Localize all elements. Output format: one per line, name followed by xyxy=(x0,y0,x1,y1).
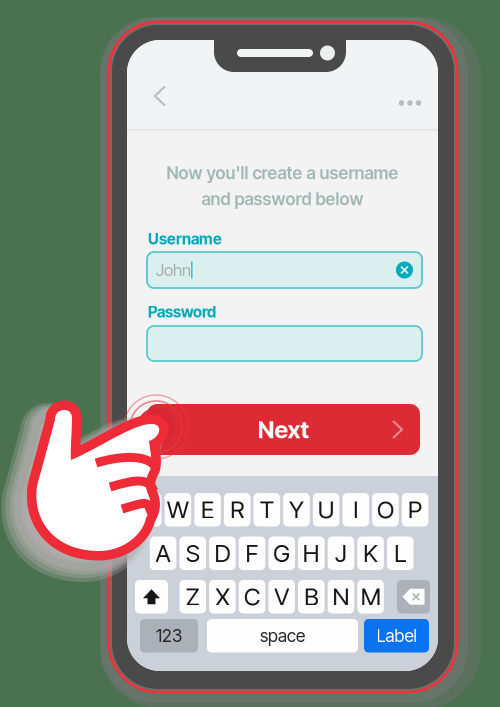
staticText: K xyxy=(363,539,378,568)
staticText: O xyxy=(377,495,394,524)
staticText: B xyxy=(304,582,318,611)
staticText: F xyxy=(245,539,258,568)
staticText: Username xyxy=(148,230,222,248)
button[interactable]: L xyxy=(387,536,413,570)
button[interactable]: Back xyxy=(155,86,165,106)
staticText: Next xyxy=(257,415,309,444)
button[interactable]: Next xyxy=(147,404,420,455)
staticText: 123 xyxy=(156,625,182,646)
staticText: John xyxy=(156,260,191,280)
staticText: Label xyxy=(376,625,416,646)
button[interactable]: G xyxy=(268,536,295,570)
button[interactable]: B xyxy=(298,580,325,613)
button[interactable]: Y xyxy=(283,493,310,526)
button[interactable]: C xyxy=(239,580,265,613)
staticText: S xyxy=(186,539,200,568)
button[interactable]: Shift xyxy=(135,580,168,613)
button[interactable]: Delete xyxy=(397,580,430,613)
staticText: C xyxy=(244,582,260,611)
staticText: N xyxy=(332,582,349,611)
staticText: W xyxy=(167,495,189,524)
button[interactable]: Label xyxy=(364,619,429,652)
button[interactable]: E xyxy=(194,493,221,526)
staticText: P xyxy=(408,495,422,524)
button[interactable]: Q xyxy=(135,493,161,526)
button[interactable]: S xyxy=(179,536,206,570)
button[interactable]: O xyxy=(372,493,399,526)
button[interactable]: 123 xyxy=(140,619,198,652)
staticText: X xyxy=(215,582,229,611)
staticText: Q xyxy=(140,495,157,524)
button[interactable]: space xyxy=(207,619,358,652)
button[interactable]: X xyxy=(209,580,236,613)
button[interactable]: A xyxy=(150,536,176,570)
staticText: Password xyxy=(148,303,216,321)
staticText: space xyxy=(260,625,305,646)
staticText: A xyxy=(156,539,171,568)
staticText: L xyxy=(394,539,406,568)
staticText: H xyxy=(303,539,320,568)
button[interactable]: Z xyxy=(179,580,206,613)
button[interactable]: K xyxy=(357,536,384,570)
staticText: G xyxy=(273,539,290,568)
staticText: J xyxy=(335,539,347,568)
button[interactable]: More options xyxy=(390,91,430,115)
staticText: E xyxy=(201,495,214,524)
staticText: V xyxy=(274,582,289,611)
button[interactable]: M xyxy=(357,580,384,613)
staticText: D xyxy=(214,539,230,568)
staticText: I xyxy=(353,495,358,524)
button[interactable]: N xyxy=(328,580,354,613)
button[interactable]: T xyxy=(254,493,280,526)
staticText: R xyxy=(230,495,244,524)
staticText: U xyxy=(318,495,335,524)
staticText: Now you'll create a username xyxy=(166,162,398,183)
button[interactable]: J xyxy=(328,536,354,570)
staticText: and password below xyxy=(201,188,363,209)
button[interactable]: I xyxy=(342,493,369,526)
button[interactable]: P xyxy=(402,493,428,526)
button[interactable]: U xyxy=(313,493,339,526)
button[interactable]: F xyxy=(239,536,265,570)
button[interactable]: W xyxy=(165,493,191,526)
button[interactable]: H xyxy=(298,536,325,570)
staticText: T xyxy=(260,495,274,524)
button[interactable]: D xyxy=(209,536,236,570)
button[interactable]: V xyxy=(268,580,295,613)
button[interactable]: R xyxy=(224,493,250,526)
staticText: Y xyxy=(289,495,304,524)
staticText: M xyxy=(361,582,381,611)
staticText: Z xyxy=(186,582,200,611)
